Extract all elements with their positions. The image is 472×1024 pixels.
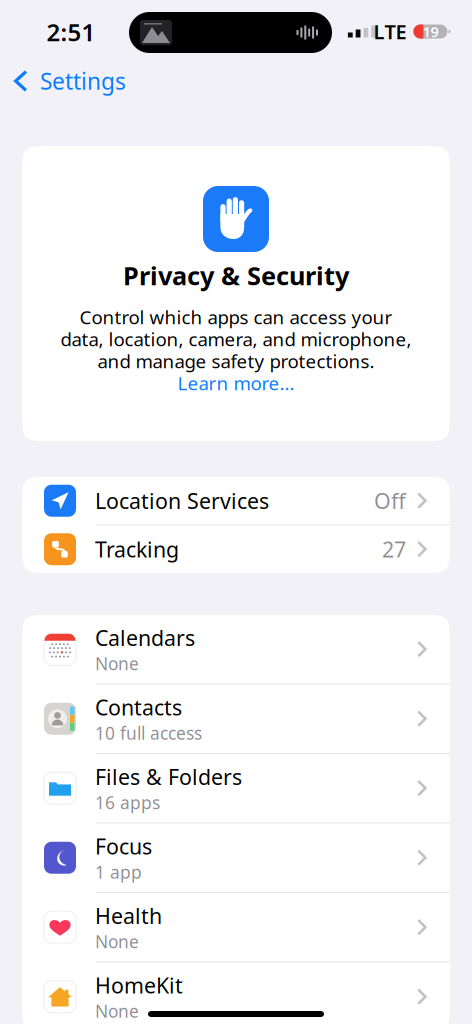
staticText: None — [95, 999, 139, 1022]
staticText: Focus — [95, 832, 152, 860]
staticText: Privacy & Security — [123, 259, 349, 292]
staticText: 19 — [422, 22, 438, 41]
staticText: 16 apps — [95, 791, 160, 814]
staticText: Off — [374, 487, 406, 515]
button[interactable]: Contacts — [22, 684, 450, 753]
staticText: 27 — [382, 535, 406, 563]
button[interactable]: Calendars — [22, 615, 450, 683]
staticText: 2:51 — [46, 16, 95, 48]
staticText: Calendars — [95, 624, 195, 652]
button[interactable]: HomeKit — [22, 962, 450, 1024]
staticText: 10 full access — [95, 721, 202, 744]
staticText: Location Services — [95, 487, 269, 515]
staticText: HomeKit — [95, 971, 183, 999]
staticText: data, location, camera, and microphone, — [60, 327, 411, 351]
staticText: Health — [95, 902, 162, 930]
staticText: LTE — [373, 18, 406, 45]
staticText: None — [95, 930, 139, 953]
button[interactable]: Learn more... — [177, 372, 294, 394]
staticText: Settings — [40, 66, 126, 96]
button[interactable]: Health — [22, 893, 450, 961]
staticText: Control which apps can access your — [79, 305, 392, 329]
button[interactable]: Files & Folders — [22, 754, 450, 822]
button[interactable]: Location Services — [22, 477, 450, 524]
staticText: Contacts — [95, 693, 182, 721]
staticText: Files & Folders — [95, 763, 242, 791]
staticText: and manage safety protections. — [97, 349, 374, 373]
button[interactable]: Settings — [0, 60, 138, 102]
staticText: 1 app — [95, 860, 142, 883]
button[interactable]: Focus — [22, 823, 450, 892]
button[interactable]: Tracking — [22, 525, 450, 573]
staticText: Tracking — [95, 535, 179, 563]
staticText: Learn more... — [177, 371, 294, 395]
staticText: None — [95, 652, 139, 675]
